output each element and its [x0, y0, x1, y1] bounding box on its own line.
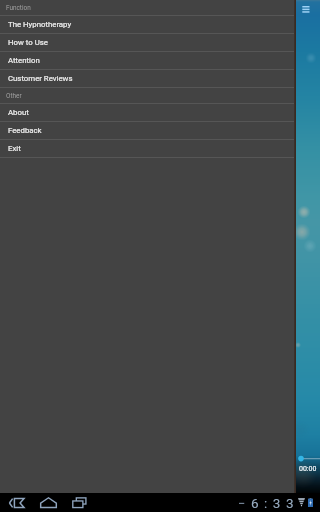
- button[interactable]: Exit: [0, 140, 294, 158]
- button[interactable]: About: [0, 104, 294, 122]
- staticText: Exit: [8, 144, 21, 153]
- staticText: Function: [6, 4, 31, 12]
- staticText: 00:00: [299, 465, 317, 473]
- button[interactable]: Recent apps: [67, 493, 93, 512]
- button[interactable]: Open navigation drawer: [300, 2, 312, 16]
- staticText: About: [8, 108, 29, 117]
- staticText: Other: [6, 92, 22, 100]
- button[interactable]: How to Use: [0, 34, 294, 52]
- button[interactable]: Feedback: [0, 122, 294, 140]
- staticText: Customer Reviews: [8, 74, 73, 83]
- button[interactable]: Back: [3, 493, 29, 512]
- button[interactable]: Home: [35, 493, 61, 512]
- button[interactable]: Playback position: [296, 453, 320, 473]
- button[interactable]: Attention: [0, 52, 294, 70]
- staticText: 6:33: [251, 495, 300, 511]
- button[interactable]: Customer Reviews: [0, 70, 294, 88]
- staticText: Feedback: [8, 126, 42, 135]
- staticText: The Hypnotherapy: [8, 20, 72, 29]
- button[interactable]: The Hypnotherapy: [0, 16, 294, 34]
- staticText: How to Use: [8, 38, 48, 47]
- staticText: Attention: [8, 56, 40, 65]
